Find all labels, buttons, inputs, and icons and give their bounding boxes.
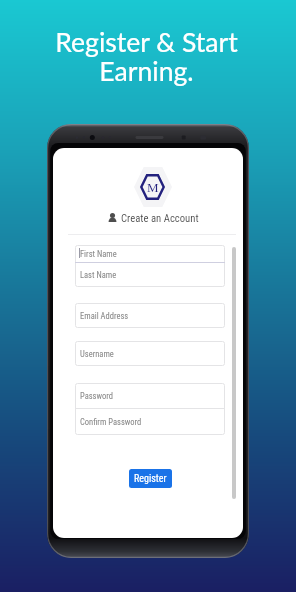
staticText: Username: [80, 349, 114, 359]
staticText: Email Address: [80, 311, 129, 321]
staticText: Last Name: [80, 270, 117, 280]
staticText: First Name: [80, 249, 117, 259]
button[interactable]: Last Name: [75, 262, 225, 287]
staticText: Confirm Password: [80, 417, 142, 427]
button[interactable]: First Name: [75, 245, 225, 262]
button[interactable]: Create an Account: [108, 209, 199, 227]
button[interactable]: Username: [75, 341, 225, 366]
staticText: Create an Account: [121, 212, 199, 225]
staticText: Register & Start Earning.: [55, 26, 238, 87]
button[interactable]: Register: [129, 469, 172, 488]
button[interactable]: Email Address: [75, 303, 225, 328]
staticText: Password: [80, 391, 114, 401]
staticText: Register: [134, 473, 167, 485]
staticText: M: [147, 180, 159, 194]
button[interactable]: Password: [75, 383, 225, 409]
button[interactable]: Confirm Password: [75, 409, 225, 435]
